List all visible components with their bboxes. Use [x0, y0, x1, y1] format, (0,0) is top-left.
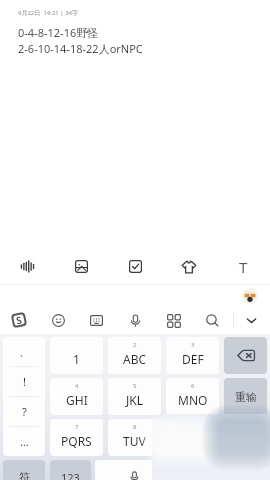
button[interactable]: 123: [50, 460, 91, 480]
button[interactable]: 符: [3, 460, 45, 480]
staticText: PQRS: [61, 433, 92, 449]
button[interactable]: Hide keyboard: [237, 306, 265, 334]
staticText: 重输: [235, 390, 257, 404]
button[interactable]: Insert image: [54, 249, 108, 284]
staticText: 8: [133, 423, 137, 431]
staticText: GHI: [66, 392, 88, 408]
button[interactable]: 、: [3, 337, 45, 366]
button[interactable]: 8: [108, 419, 161, 456]
button[interactable]: More apps: [159, 306, 187, 334]
staticText: !: [23, 374, 26, 389]
button[interactable]: Voice input: [121, 306, 149, 334]
button[interactable]: 7: [50, 419, 103, 456]
staticText: S: [15, 312, 23, 327]
staticText: 2: [133, 341, 137, 349]
button[interactable]: 3: [166, 337, 219, 374]
staticText: 123: [61, 470, 80, 480]
staticText: 符: [19, 470, 30, 480]
staticText: TUV: [123, 433, 146, 449]
button[interactable]: 1: [50, 337, 103, 374]
button[interactable]: Keyboard layout: [82, 306, 110, 334]
staticText: T: [239, 257, 248, 277]
staticText: DEF: [182, 351, 204, 367]
staticText: 7: [75, 423, 79, 431]
button[interactable]: Search: [198, 306, 226, 334]
button[interactable]: 2: [108, 337, 161, 374]
button[interactable]: …: [3, 427, 45, 456]
button[interactable]: 重输: [224, 378, 267, 415]
button[interactable]: 4: [50, 378, 103, 415]
staticText: 6: [191, 382, 195, 390]
button[interactable]: Sogou input: [5, 306, 33, 334]
staticText: 3: [191, 341, 195, 349]
staticText: 4: [75, 382, 79, 390]
button[interactable]: Checklist: [108, 249, 162, 284]
button[interactable]: 9: [166, 419, 219, 456]
staticText: 0-4-8-12-16野怪 2-6-10-14-18-22人orNPC: [18, 25, 143, 56]
staticText: 、: [19, 345, 30, 359]
button[interactable]: !: [3, 367, 45, 396]
button[interactable]: 5: [108, 378, 161, 415]
button[interactable]: Voice recording: [0, 249, 54, 284]
button[interactable]: Text format: [216, 249, 270, 284]
button[interactable]: Space: [95, 460, 173, 480]
button[interactable]: [224, 419, 267, 456]
button[interactable]: Emoji: [44, 306, 72, 334]
button[interactable]: Profile avatar: [242, 288, 258, 304]
staticText: JKL: [126, 392, 143, 408]
button[interactable]: ?: [3, 397, 45, 426]
staticText: …: [20, 434, 29, 449]
staticText: MNO: [178, 392, 208, 408]
staticText: WXYZ: [177, 433, 209, 449]
staticText: 9月22日 14:21 | 34字: [18, 9, 79, 17]
staticText: ?: [22, 404, 27, 419]
button[interactable]: Sticker: [162, 249, 216, 284]
staticText: ABC: [123, 351, 147, 367]
button[interactable]: 6: [166, 378, 219, 415]
staticText: 1: [73, 351, 80, 367]
other: Backspace: [237, 350, 255, 361]
button[interactable]: Backspace: [224, 337, 267, 374]
staticText: 5: [133, 382, 137, 390]
